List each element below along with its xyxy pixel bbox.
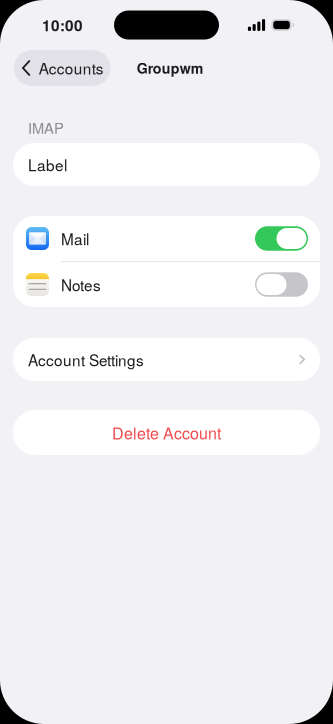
staticText: Notes <box>61 273 101 295</box>
staticText: 10:00 <box>42 14 83 36</box>
staticText: Groupwm <box>137 58 204 78</box>
button[interactable]: Delete Account <box>0 410 333 455</box>
button[interactable]: Account Settings <box>0 338 333 381</box>
staticText: Delete Account <box>112 421 221 444</box>
staticText: Mail <box>61 227 89 249</box>
staticText: Account Settings <box>28 348 144 370</box>
button[interactable]: Accounts <box>14 50 111 86</box>
staticText: Accounts <box>39 57 104 79</box>
staticText: IMAP <box>28 117 64 138</box>
staticText: Label <box>28 153 67 175</box>
